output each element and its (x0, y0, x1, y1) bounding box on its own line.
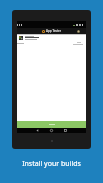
button[interactable]: Account (77, 30, 80, 33)
staticText: App Tester (46, 29, 61, 33)
button[interactable] (17, 121, 86, 128)
staticText: Install your builds (22, 159, 81, 169)
button[interactable]: Home (50, 129, 53, 132)
button[interactable]: Back (36, 129, 39, 132)
button[interactable] (17, 35, 86, 41)
button[interactable]: Recents (64, 129, 67, 132)
